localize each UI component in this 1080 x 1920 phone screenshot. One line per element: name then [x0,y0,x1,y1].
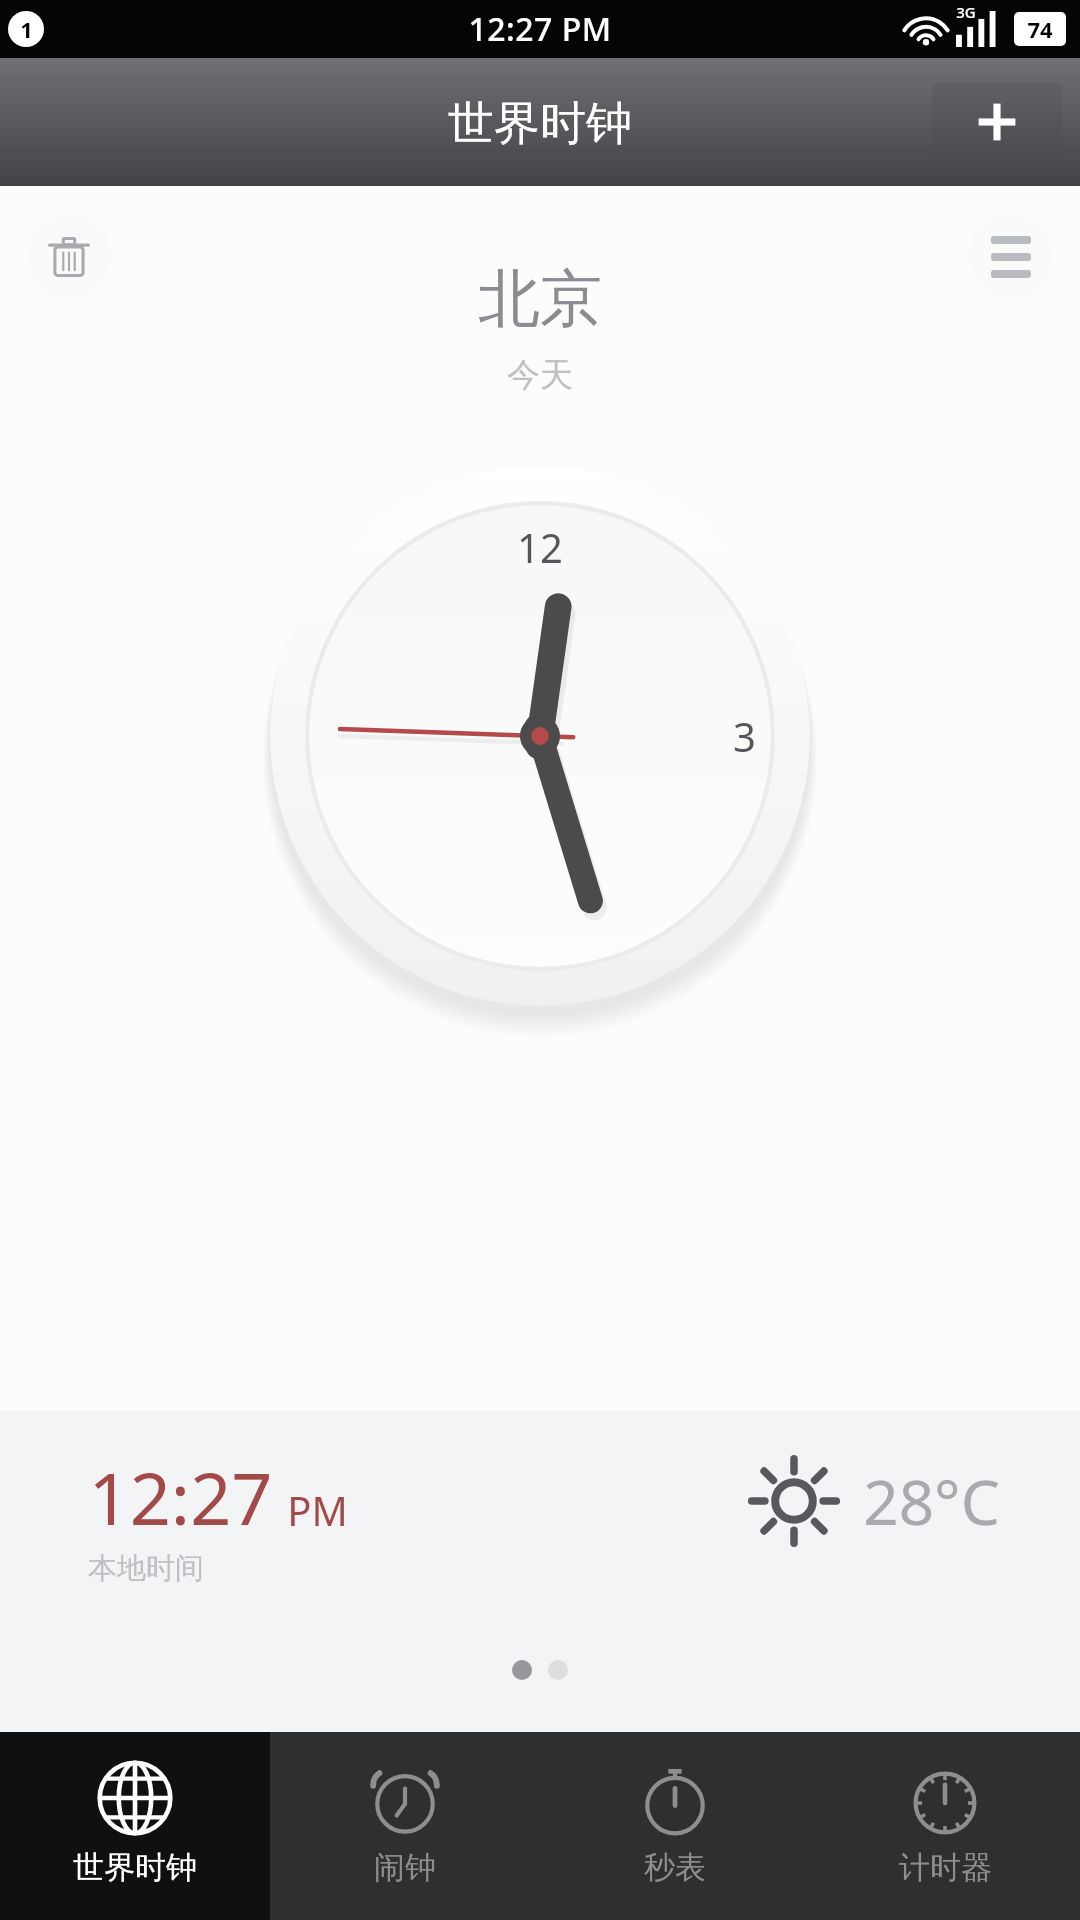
button[interactable]: 世界时钟 [0,1732,270,1920]
button[interactable]: Add city [932,82,1062,162]
button[interactable]: Delete [26,214,112,300]
staticText: PM [287,1483,348,1537]
staticText: 3G [956,2,976,22]
button[interactable]: 闹钟 [270,1732,540,1920]
staticText: 计时器 [899,1848,992,1887]
staticText: 28°C [863,1459,1000,1543]
staticText: 3 [733,709,756,763]
staticText: 1 [20,14,33,44]
staticText: 世界时钟 [73,1848,197,1887]
staticText: 12 [517,520,563,574]
staticText: 秒表 [644,1848,706,1887]
button[interactable]: 计时器 [810,1732,1080,1920]
staticText: 北京 [478,260,602,338]
staticText: 本地时间 [88,1550,204,1587]
staticText: 世界时钟 [448,95,632,153]
staticText: 74 [1027,14,1053,44]
staticText: 闹钟 [374,1848,436,1887]
staticText: 12:27 [88,1448,273,1546]
staticText: 今天 [507,354,573,396]
button[interactable]: 秒表 [540,1732,810,1920]
staticText: 12:27 PM [468,7,612,51]
button[interactable]: Menu [968,214,1054,300]
